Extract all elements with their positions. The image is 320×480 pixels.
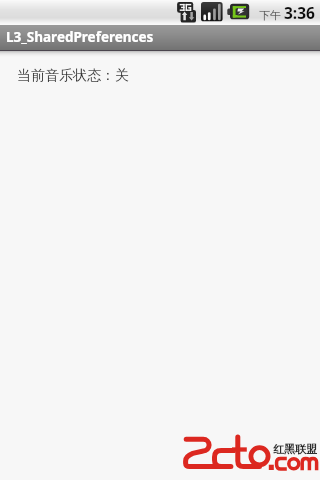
button[interactable]: 当前音乐状态：关 bbox=[0, 57, 320, 92]
staticText: 下午 bbox=[259, 8, 281, 22]
staticText: L3_SharedPreferences bbox=[6, 28, 154, 46]
staticText: 红黑联盟 bbox=[273, 442, 317, 456]
other: Mobile signal strength bbox=[200, 0, 224, 24]
other: Battery charging bbox=[226, 0, 251, 24]
other: 3G data connection active bbox=[176, 0, 198, 24]
staticText: 当前音乐状态：关 bbox=[17, 67, 129, 85]
staticText: 3:36 bbox=[284, 2, 315, 23]
